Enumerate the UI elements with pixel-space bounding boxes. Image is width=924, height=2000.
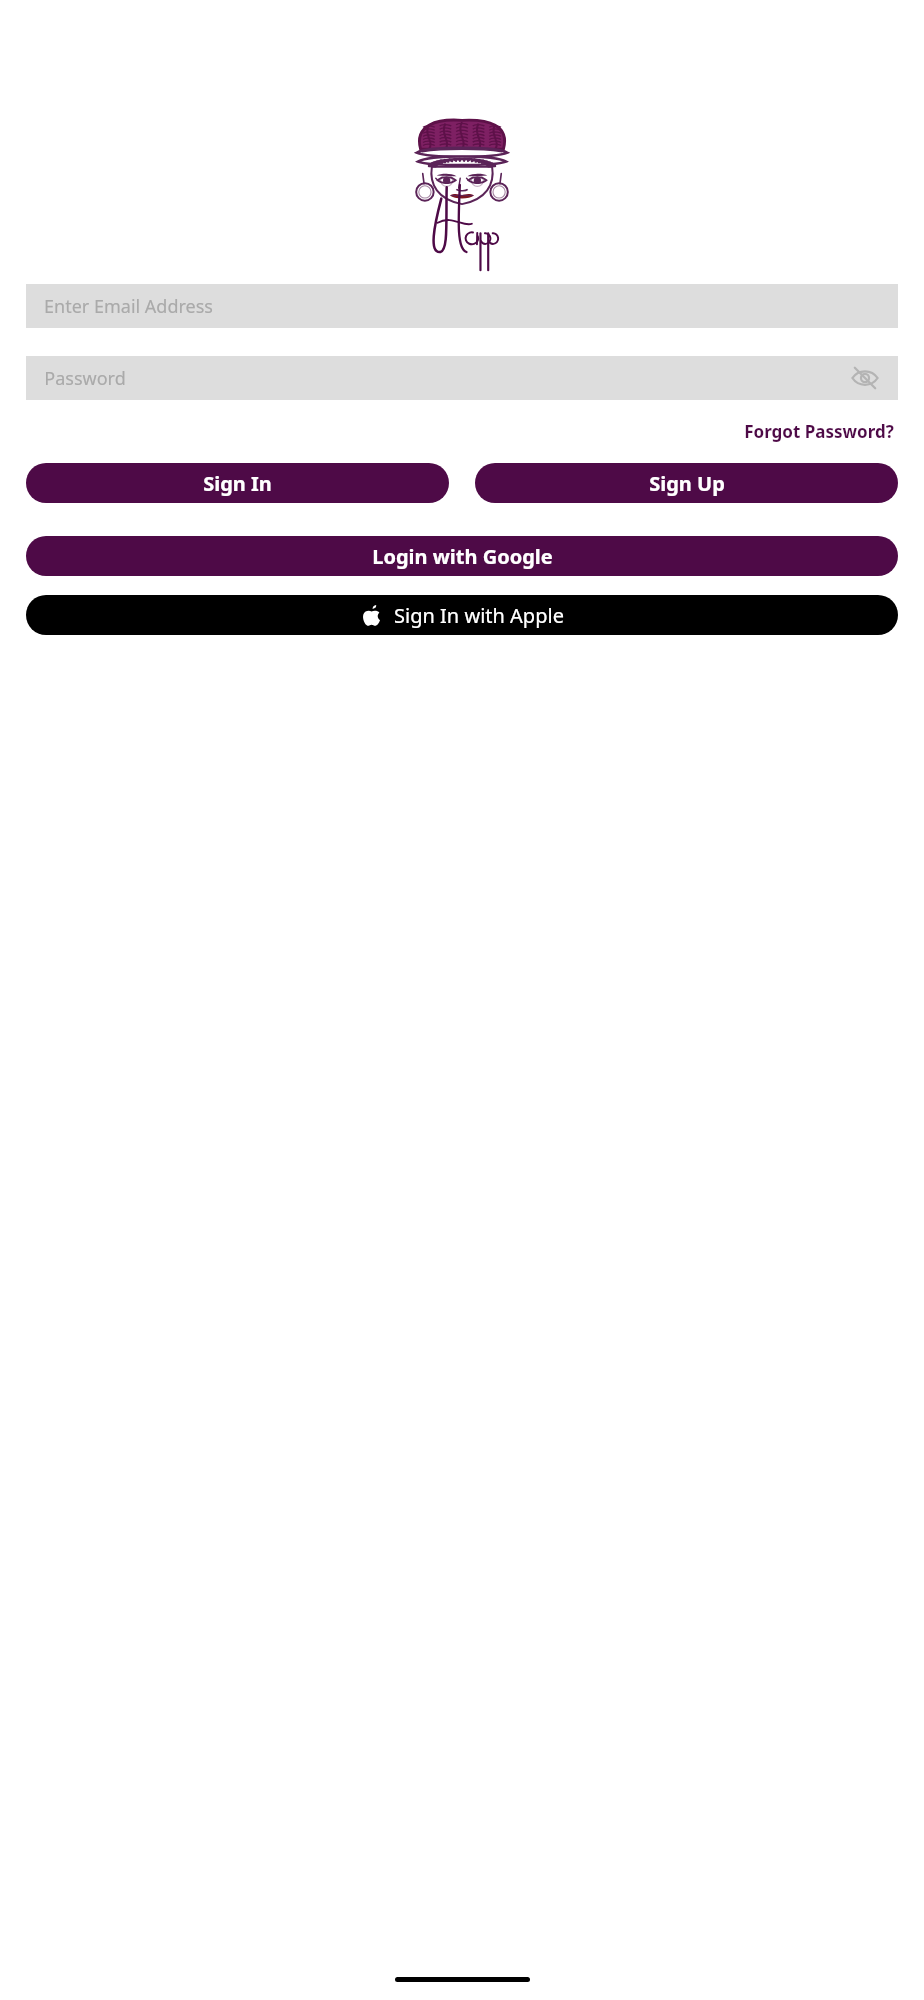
button[interactable]: Enter Email Address xyxy=(26,284,898,328)
staticText: Enter Email Address xyxy=(44,294,213,319)
button[interactable]: Show password xyxy=(846,359,884,397)
button[interactable]: Login with Google xyxy=(26,536,898,576)
button[interactable]: Sign Up xyxy=(475,463,898,503)
staticText: Login with Google xyxy=(372,543,553,570)
button[interactable]: Password xyxy=(26,356,898,400)
staticText: Sign Up xyxy=(649,470,725,497)
staticText: Password xyxy=(44,366,126,391)
staticText: Sign In with Apple xyxy=(394,602,564,629)
button[interactable]: Sign In xyxy=(26,463,449,503)
button[interactable]: Forgot Password? xyxy=(740,416,898,447)
button[interactable]: Sign In with Apple xyxy=(26,595,898,635)
staticText: Sign In xyxy=(203,470,272,497)
staticText: Forgot Password? xyxy=(744,420,894,443)
